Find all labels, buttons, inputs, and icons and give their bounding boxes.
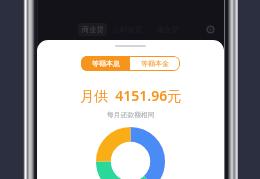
staticText: 等额本息 (92, 59, 120, 68)
button[interactable]: 公积金贷 (111, 23, 144, 36)
button[interactable]: 等额本金 (130, 56, 180, 71)
staticText: 公积金贷 (113, 25, 143, 34)
staticText: 组合贷 (157, 25, 179, 34)
button[interactable]: Settings (205, 24, 216, 35)
button[interactable]: 商业贷 (78, 23, 107, 36)
staticText: 月供 4151.96元 (80, 86, 182, 105)
staticText: 每月还款额相同 (107, 110, 155, 119)
staticText: 商业贷 (82, 25, 104, 34)
staticText: 等额本金 (141, 59, 169, 68)
button[interactable]: 等额本息 (81, 56, 130, 71)
